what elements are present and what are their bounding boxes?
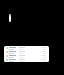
button[interactable] [4,50,49,54]
button[interactable] [4,46,49,50]
button[interactable] [4,54,49,58]
button[interactable] [4,58,49,62]
